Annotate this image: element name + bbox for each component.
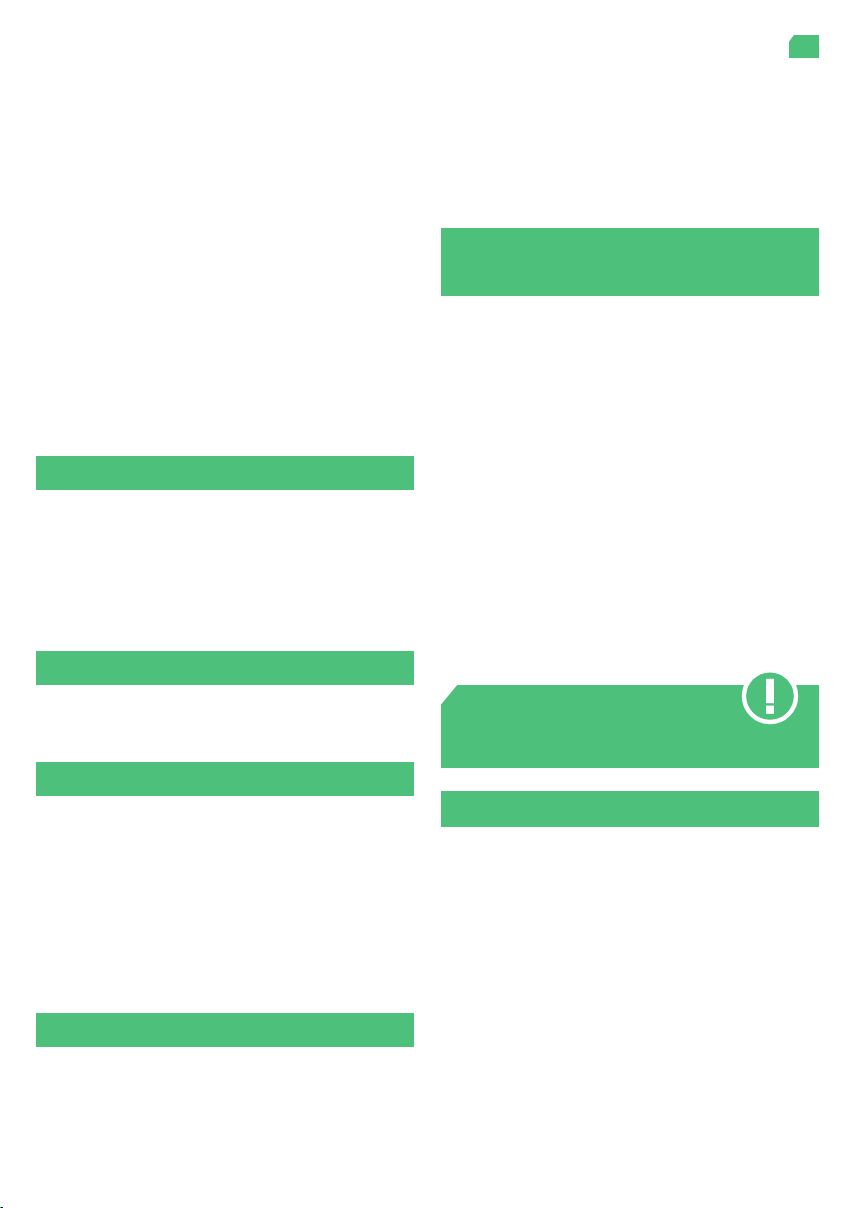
- button[interactable]: Notice card: [441, 685, 819, 768]
- button[interactable]: Tag: [789, 35, 819, 58]
- button[interactable]: Important notice: [742, 668, 798, 724]
